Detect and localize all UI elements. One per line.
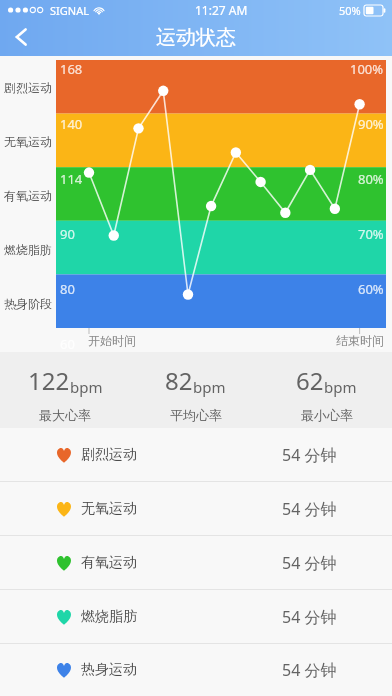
staticText: 80 bbox=[60, 280, 75, 298]
staticText: 114 bbox=[60, 170, 83, 188]
staticText: 剧烈运动 bbox=[81, 446, 137, 464]
staticText: 54 分钟 bbox=[282, 659, 392, 681]
button[interactable]: 有氧运动 bbox=[0, 536, 392, 589]
staticText: 54 分钟 bbox=[282, 444, 392, 466]
staticText: 140 bbox=[60, 115, 83, 133]
staticText: 82 bbox=[165, 364, 193, 397]
staticText: 62 bbox=[296, 364, 324, 397]
staticText: 54 分钟 bbox=[282, 606, 392, 628]
staticText: 168 bbox=[60, 60, 83, 78]
staticText: 80% bbox=[358, 170, 384, 188]
staticText: 有氧运动 bbox=[4, 188, 52, 203]
staticText: 50% bbox=[339, 3, 361, 18]
staticText: 11:27 AM bbox=[195, 2, 248, 18]
button[interactable]: 燃烧脂肪 bbox=[0, 590, 392, 643]
button[interactable]: 热身运动 bbox=[0, 644, 392, 696]
staticText: bpm bbox=[70, 377, 103, 397]
staticText: 最小心率 bbox=[301, 407, 353, 423]
staticText: 最大心率 bbox=[39, 407, 91, 423]
staticText: 90% bbox=[358, 115, 384, 133]
button[interactable]: 无氧运动 bbox=[0, 482, 392, 535]
staticText: 50% bbox=[358, 335, 384, 352]
staticText: 剧烈运动 bbox=[4, 80, 52, 95]
staticText: 运动状态 bbox=[156, 25, 236, 50]
staticText: bpm bbox=[324, 377, 357, 397]
staticText: 无氧运动 bbox=[4, 134, 52, 149]
staticText: 54 分钟 bbox=[282, 552, 392, 574]
staticText: 60% bbox=[358, 280, 384, 298]
staticText: 热身运动 bbox=[81, 661, 137, 679]
button[interactable]: Back bbox=[0, 15, 44, 59]
staticText: 热身阶段 bbox=[4, 296, 52, 311]
staticText: 有氧运动 bbox=[81, 554, 137, 572]
staticText: 燃烧脂肪 bbox=[81, 608, 137, 626]
staticText: bpm bbox=[193, 377, 226, 397]
staticText: 无氧运动 bbox=[81, 500, 137, 518]
staticText: 开始时间 bbox=[88, 333, 136, 348]
staticText: 平均心率 bbox=[170, 407, 222, 423]
staticText: 90 bbox=[60, 225, 75, 243]
staticText: 122 bbox=[28, 364, 70, 397]
staticText: 结束时间 bbox=[336, 333, 384, 348]
staticText: 燃烧脂肪 bbox=[4, 242, 52, 257]
button[interactable]: 剧烈运动 bbox=[0, 428, 392, 481]
staticText: 100% bbox=[350, 60, 384, 78]
staticText: SIGNAL bbox=[50, 3, 89, 18]
staticText: 54 分钟 bbox=[282, 498, 392, 520]
staticText: 70% bbox=[358, 225, 384, 243]
